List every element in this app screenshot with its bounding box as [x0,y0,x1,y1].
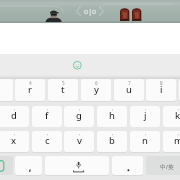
button[interactable] [112,156,143,175]
button[interactable]: ’ [64,131,94,152]
staticText: 8 [160,80,163,86]
staticText: ’ [79,108,80,114]
staticText: r [28,83,32,96]
button[interactable]: 4 [15,79,45,101]
button[interactable]: 中/英 [146,156,180,175]
staticText: 5 [62,80,65,86]
staticText: ’ [145,108,146,114]
staticText: b [109,134,115,147]
staticText: ’ [14,133,15,139]
staticText: y [94,83,99,96]
staticText: ’ [79,133,80,139]
staticText: 中/英 [160,163,174,171]
staticText: x [11,134,17,147]
button[interactable]: ’ [163,131,180,152]
button[interactable]: 8 [146,79,176,101]
button[interactable]: 7 [114,79,144,101]
staticText: h [109,109,115,122]
staticText: ’ [145,133,146,139]
button[interactable]: Space [45,156,109,175]
staticText: g [76,109,82,122]
staticText: 4 [29,80,32,86]
button[interactable]: ’ [97,131,127,152]
staticText: ’ [47,108,48,114]
staticText: ’ [47,133,48,139]
button[interactable]: 9 [179,79,180,101]
button[interactable]: ’ [0,131,29,152]
staticText: o|o [84,7,97,17]
staticText: ’ [14,108,15,114]
button[interactable]: ’ [64,106,94,127]
button[interactable]: ’ [97,106,127,127]
staticText: d [11,109,17,122]
button[interactable]: ’ [32,131,62,152]
staticText: j [144,109,147,122]
staticText: ’ [112,133,113,139]
staticText: f [45,109,49,122]
staticText: 6 [95,80,98,86]
button[interactable] [15,156,42,175]
staticText: ’ [178,133,179,139]
button[interactable]: ’ [130,131,160,152]
button[interactable]: Emoji [73,61,82,70]
staticText: m [174,134,180,147]
button[interactable]: 6 [81,79,111,101]
staticText: v [77,134,82,147]
button[interactable]: ’ [163,106,180,127]
button[interactable]: ’ [130,106,160,127]
staticText: u [126,83,132,96]
staticText: t [61,83,65,96]
staticText: c [45,134,50,147]
button[interactable]: ’ [32,106,62,127]
staticText: n [142,134,148,147]
button[interactable]: ’ [0,106,29,127]
staticText: 7 [128,80,131,86]
staticText: ’ [112,108,113,114]
staticText: k [175,109,180,122]
staticText: i [160,83,163,96]
button[interactable]: 5 [48,79,78,101]
staticText: ’ [178,108,179,114]
button[interactable]: Symbols [0,156,13,175]
